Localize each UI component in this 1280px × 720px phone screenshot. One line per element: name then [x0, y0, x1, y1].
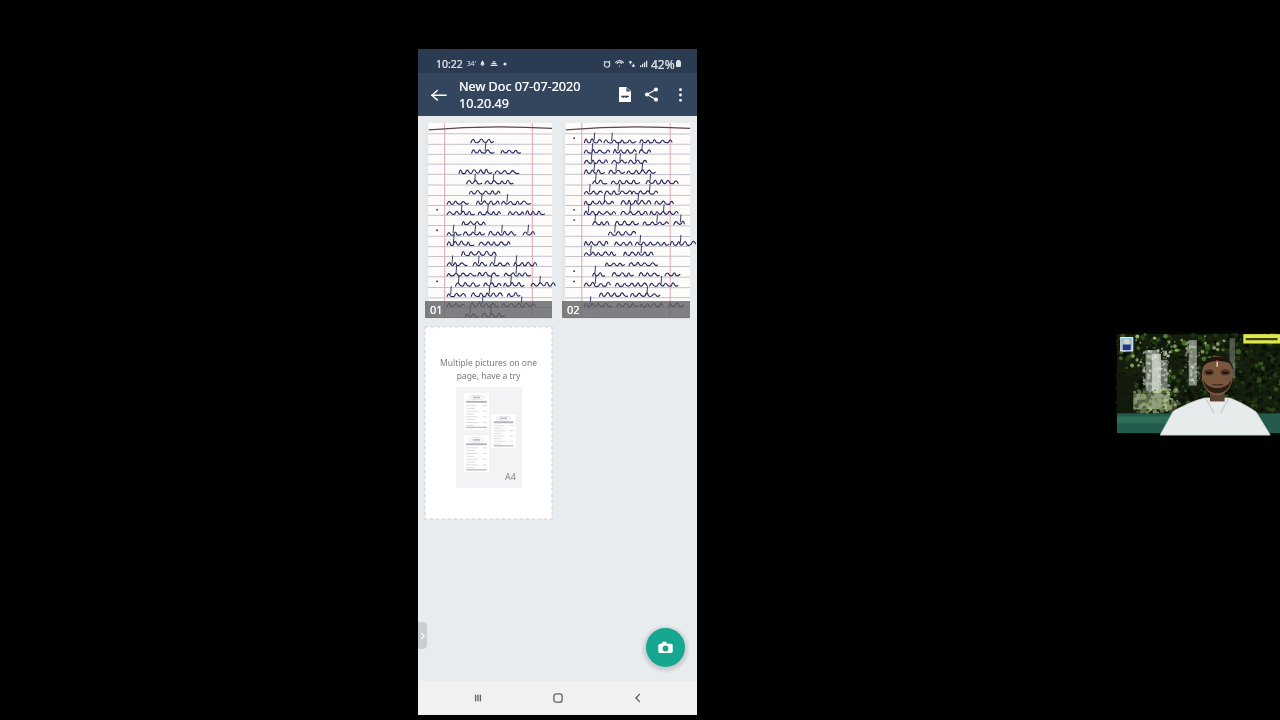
staticText: Multiple pictures on one page, have a tr… — [440, 357, 537, 382]
button[interactable]: Scanned page 02 — [562, 123, 690, 318]
staticText: 02 — [567, 302, 580, 317]
button[interactable]: Back — [598, 682, 678, 714]
staticText: 34' — [467, 59, 476, 68]
staticText: 01 — [430, 302, 443, 317]
staticText: New Doc 07-07-2020 10.20.49 — [459, 78, 605, 111]
button[interactable]: Multiple pictures on one page, have a tr… — [425, 327, 552, 519]
button[interactable]: More options — [666, 73, 694, 116]
staticText: A4 — [505, 470, 516, 482]
staticText: 10:22 — [436, 57, 463, 71]
button[interactable]: Back — [418, 73, 459, 116]
button[interactable]: Recent apps — [437, 682, 518, 714]
button[interactable]: Expand side panel — [418, 622, 427, 649]
button[interactable]: Export as PDF — [614, 73, 636, 116]
button[interactable]: Home — [518, 682, 598, 714]
button[interactable]: Take photo — [646, 628, 685, 667]
staticText: 42% — [651, 56, 675, 72]
button[interactable]: Share — [636, 73, 666, 116]
button[interactable]: Scanned page 01 — [425, 123, 552, 318]
